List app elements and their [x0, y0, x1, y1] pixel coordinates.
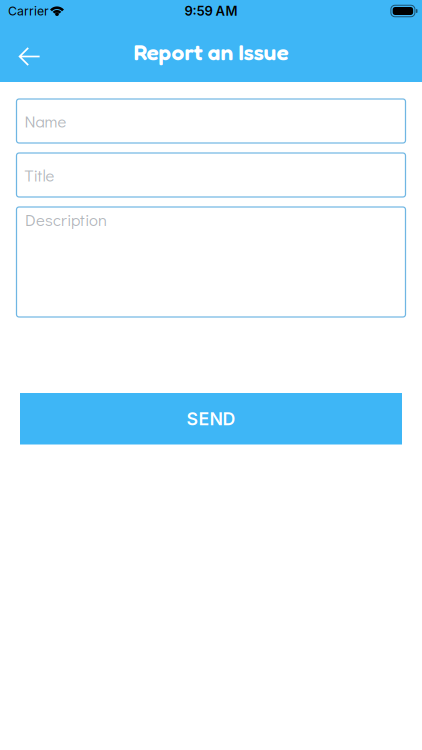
staticText: Carrier — [8, 4, 49, 18]
staticText: SEND — [186, 408, 235, 429]
staticText: 9:59 AM — [184, 3, 237, 19]
staticText: Description — [25, 208, 107, 230]
button[interactable]: SEND — [20, 393, 402, 444]
staticText: Report an Issue — [133, 38, 288, 66]
button[interactable]: Back — [0, 30, 41, 73]
staticText: Title — [24, 164, 54, 186]
staticText: Name — [24, 110, 66, 132]
